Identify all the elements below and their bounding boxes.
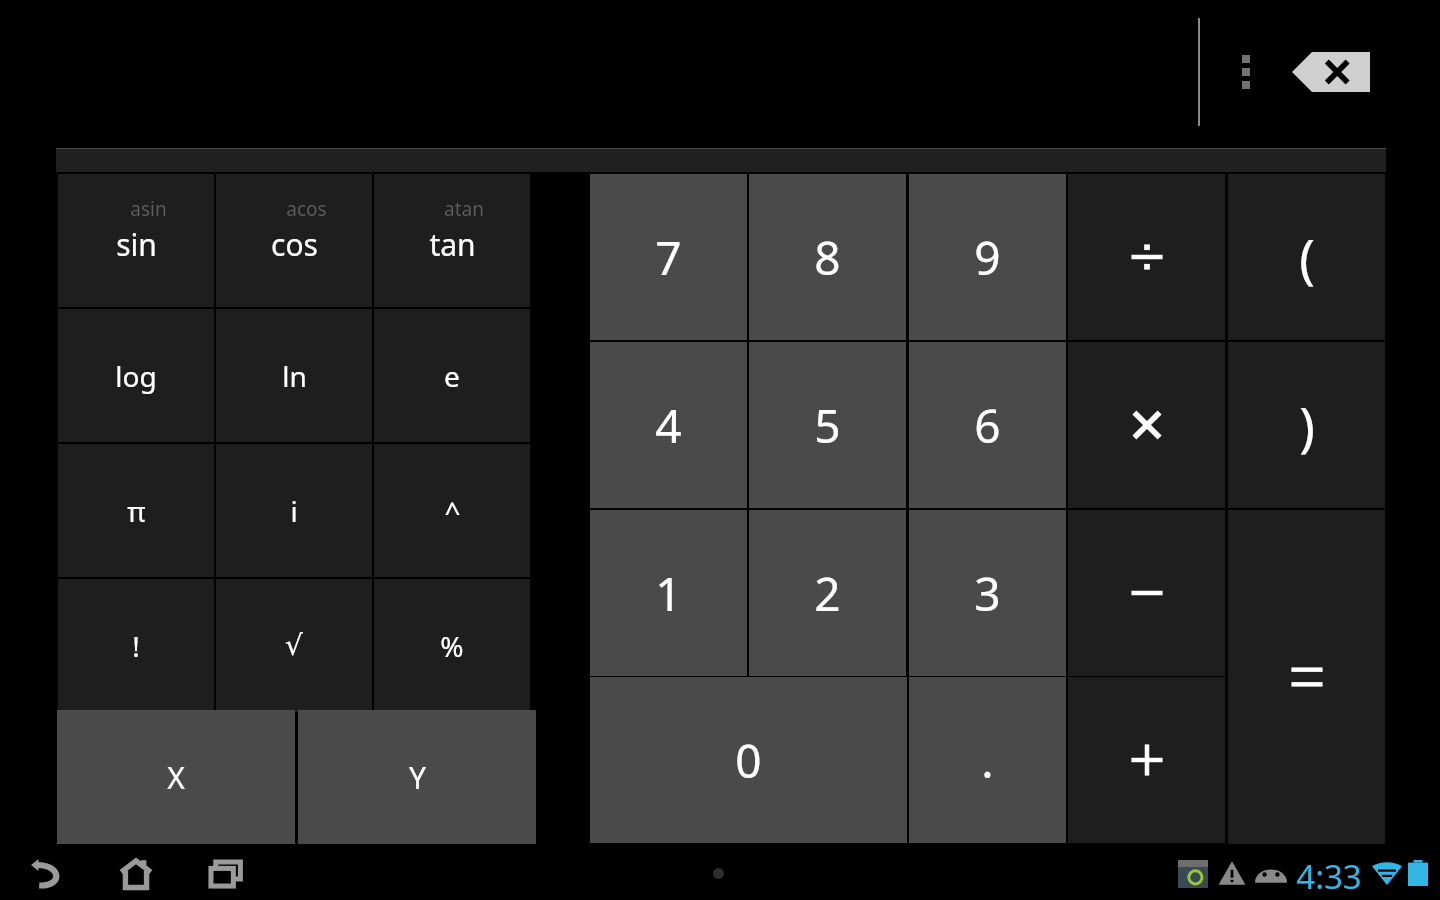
staticText: Y	[409, 757, 426, 798]
staticText: 7	[655, 226, 682, 289]
staticText: 0	[735, 729, 762, 792]
button[interactable]: )	[1227, 341, 1386, 509]
button[interactable]: ^	[373, 443, 531, 578]
button[interactable]: 3	[908, 509, 1067, 677]
button[interactable]: atan	[373, 173, 531, 308]
button[interactable]: Add	[1067, 676, 1226, 844]
staticText: X	[167, 757, 185, 798]
staticText: ^	[444, 492, 461, 530]
button[interactable]: Home	[104, 851, 168, 897]
staticText: sin	[116, 224, 157, 265]
button[interactable]: 6	[908, 341, 1067, 509]
staticText: e	[444, 357, 460, 395]
staticText: π	[127, 492, 146, 530]
button[interactable]: √	[215, 578, 373, 713]
staticText: √	[285, 629, 303, 662]
button[interactable]: Delete	[1292, 52, 1370, 92]
staticText: log	[115, 357, 157, 395]
button[interactable]: Recent apps	[194, 851, 258, 897]
button[interactable]: ln	[215, 308, 373, 443]
button[interactable]: 2	[748, 509, 907, 677]
button[interactable]: 9	[908, 173, 1067, 341]
button[interactable]: Multiply	[1067, 341, 1226, 509]
staticText: ln	[282, 357, 307, 395]
staticText: 1	[655, 562, 682, 625]
button[interactable]: Divide	[1067, 173, 1226, 341]
staticText: (	[1299, 222, 1315, 293]
staticText: 4	[655, 394, 682, 457]
button[interactable]: Equals	[1227, 509, 1386, 845]
button[interactable]: .	[908, 676, 1067, 844]
staticText: 6	[974, 394, 1001, 457]
button[interactable]: Y	[298, 710, 536, 844]
staticText: 4:33	[1296, 854, 1362, 899]
staticText: acos	[286, 196, 327, 222]
button[interactable]: %	[373, 578, 531, 713]
staticText: asin	[130, 196, 167, 222]
staticText: 2	[814, 562, 841, 625]
button[interactable]: e	[373, 308, 531, 443]
staticText: %	[440, 627, 464, 665]
button[interactable]: 7	[589, 173, 748, 341]
button[interactable]: 0	[589, 676, 908, 844]
button[interactable]: X	[57, 710, 295, 844]
button[interactable]: log	[57, 308, 215, 443]
staticText: )	[1299, 390, 1315, 461]
staticText: 8	[814, 226, 841, 289]
staticText: 9	[974, 226, 1001, 289]
button[interactable]: i	[215, 443, 373, 578]
button[interactable]: More options	[1216, 42, 1276, 102]
button[interactable]: Subtract	[1067, 509, 1226, 677]
staticText: 3	[974, 562, 1001, 625]
staticText: !	[132, 627, 140, 665]
staticText: tan	[429, 224, 476, 265]
button[interactable]: acos	[215, 173, 373, 308]
button[interactable]: (	[1227, 173, 1386, 341]
button[interactable]: 4	[589, 341, 748, 509]
staticText: 5	[814, 394, 841, 457]
button[interactable]: π	[57, 443, 215, 578]
staticText: atan	[444, 196, 484, 222]
button[interactable]: 1	[589, 509, 748, 677]
button[interactable]: asin	[57, 173, 215, 308]
button[interactable]: Back	[14, 851, 78, 897]
staticText: cos	[271, 224, 318, 265]
button[interactable]: !	[57, 578, 215, 713]
staticText: i	[290, 492, 298, 530]
staticText: .	[981, 729, 994, 792]
button[interactable]: 5	[748, 341, 907, 509]
button[interactable]: 8	[748, 173, 907, 341]
